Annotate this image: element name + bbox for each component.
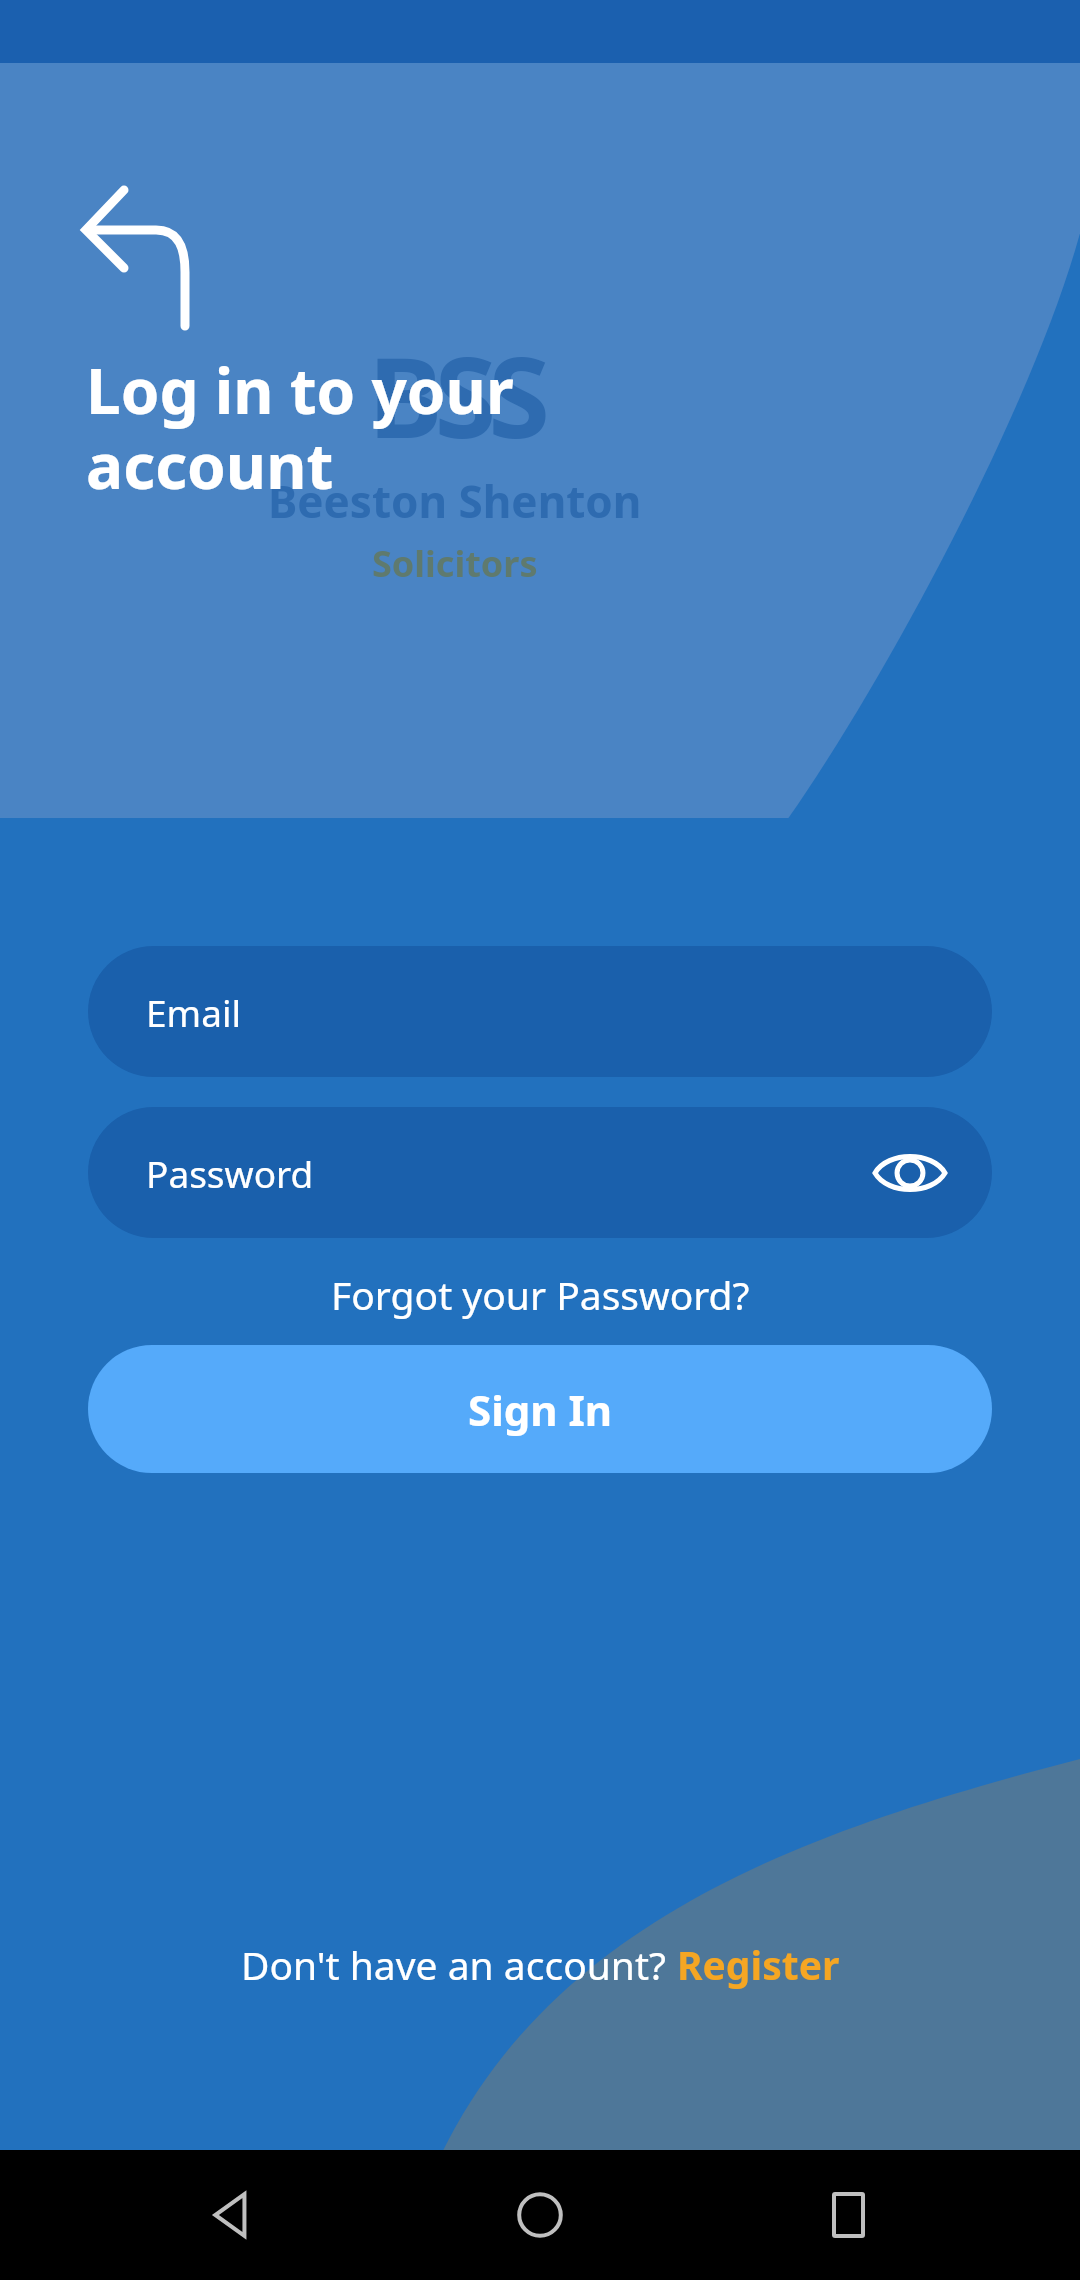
button[interactable]: Email <box>88 946 992 1077</box>
button[interactable]: Home <box>465 2150 615 2280</box>
staticText: Log in to your account <box>86 348 514 507</box>
button[interactable]: Password <box>88 1107 992 1238</box>
staticText: Beeston Shenton <box>268 471 642 531</box>
staticText: Forgot your Password? <box>331 1268 750 1321</box>
button[interactable]: Show password <box>864 1137 956 1209</box>
button[interactable]: Forgot your Password? <box>88 1260 992 1329</box>
button[interactable]: Don't have an account? <box>0 1932 1080 1997</box>
staticText: BSS <box>368 318 542 471</box>
button[interactable]: Back <box>158 2150 308 2280</box>
staticText: Email <box>146 987 242 1037</box>
staticText: Sign In <box>468 1381 613 1438</box>
button[interactable]: Sign In <box>88 1345 992 1473</box>
staticText: Password <box>146 1148 314 1198</box>
button[interactable]: Recent apps <box>773 2150 923 2280</box>
staticText: Don't have an account? <box>241 1938 677 1991</box>
staticText: Register <box>677 1938 840 1991</box>
button[interactable]: Back <box>52 152 192 292</box>
staticText: Solicitors <box>372 539 538 588</box>
